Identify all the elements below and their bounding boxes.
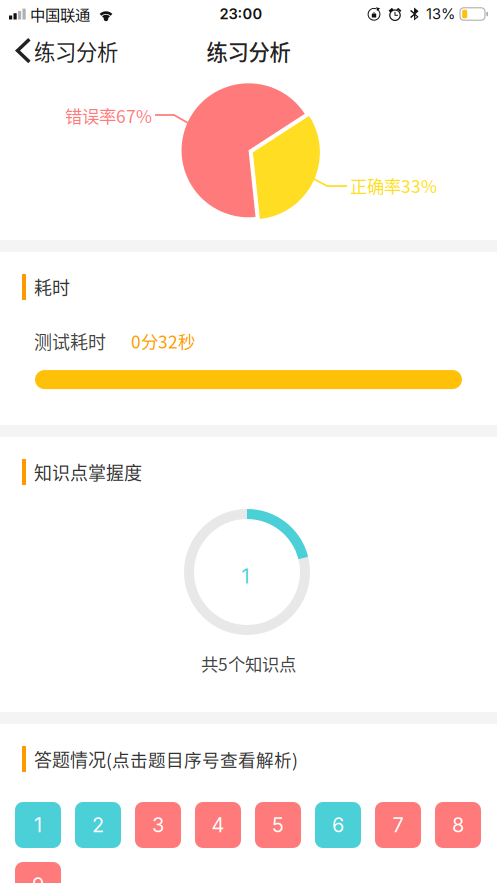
staticText: 耗时	[34, 274, 70, 300]
button[interactable]: 练习分析	[0, 28, 130, 74]
button[interactable]: 1	[15, 802, 61, 848]
staticText: 9	[32, 873, 44, 883]
staticText: 中国联通	[30, 3, 90, 25]
staticText: 1	[34, 813, 42, 837]
staticText: 知识点掌握度	[34, 459, 142, 485]
staticText: 3	[152, 813, 164, 837]
staticText: 7	[392, 813, 403, 837]
staticText: 2	[92, 813, 104, 837]
button[interactable]: 8	[435, 802, 481, 848]
button[interactable]: 6	[315, 802, 361, 848]
staticText: 8	[452, 813, 464, 837]
staticText: 练习分析	[34, 36, 118, 66]
button[interactable]: 7	[375, 802, 421, 848]
staticText: 答题情况	[34, 746, 106, 772]
button[interactable]: 3	[135, 802, 181, 848]
staticText: 正确率33%	[350, 173, 437, 198]
staticText: 错误率67%	[65, 103, 152, 128]
button[interactable]: 2	[75, 802, 121, 848]
staticText: 4	[211, 813, 224, 837]
button[interactable]: 9	[15, 862, 61, 883]
staticText: 6	[332, 813, 344, 837]
staticText: 共5个知识点	[201, 651, 296, 676]
button[interactable]: 4	[195, 802, 241, 848]
staticText: 0分32秒	[131, 328, 195, 354]
staticText: 5	[272, 813, 284, 837]
staticText: 测试耗时	[34, 328, 106, 354]
staticText: 1	[241, 564, 249, 588]
staticText: 13%	[426, 5, 455, 23]
staticText: 23:00	[219, 5, 262, 23]
staticText: 练习分析	[206, 36, 290, 66]
button[interactable]: 5	[255, 802, 301, 848]
staticText: (点击题目序号查看解析)	[106, 746, 298, 772]
